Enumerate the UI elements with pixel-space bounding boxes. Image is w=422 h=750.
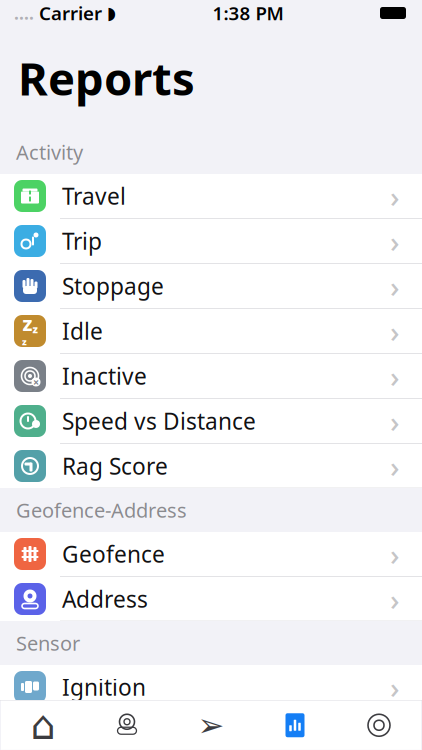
staticText: › <box>390 579 400 618</box>
staticText: 1:38 PM <box>212 1 283 25</box>
staticText: Rag Score <box>62 451 168 481</box>
staticText: Trip <box>62 226 102 256</box>
staticText: Inactive <box>62 361 147 391</box>
button[interactable]: × <box>0 354 422 399</box>
button[interactable]: Reports <box>253 701 337 750</box>
staticText: Travel <box>62 181 126 211</box>
staticText: › <box>390 221 400 260</box>
staticText: › <box>390 446 400 485</box>
staticText: Geofence <box>62 539 165 569</box>
staticText: ⌂ <box>30 703 55 748</box>
staticText: z <box>22 335 27 348</box>
staticText: ◗ <box>107 3 116 23</box>
button[interactable]: Stoppage <box>0 264 422 309</box>
staticText: › <box>390 176 400 215</box>
staticText: › <box>390 667 400 706</box>
staticText: › <box>390 356 400 395</box>
staticText: Carrier <box>39 1 102 25</box>
staticText: › <box>390 401 400 440</box>
staticText: Stoppage <box>62 271 164 301</box>
staticText: Ignition <box>62 672 146 702</box>
button[interactable]: Track <box>169 701 253 750</box>
button[interactable]: Home <box>1 701 85 750</box>
button[interactable]: Speed vs Distance <box>0 399 422 444</box>
staticText: Activity <box>16 139 83 165</box>
staticText: z <box>32 322 37 336</box>
staticText: Sensor <box>16 630 80 656</box>
staticText: Geofence-Address <box>16 497 187 523</box>
button[interactable]: Geofence <box>0 532 422 577</box>
button[interactable]: Rag Score <box>0 444 422 488</box>
button[interactable]: Trip <box>0 219 422 264</box>
button[interactable]: Travel <box>0 174 422 219</box>
staticText: .... <box>14 1 34 24</box>
staticText: Idle <box>62 316 103 346</box>
staticText: › <box>390 311 400 350</box>
staticText: › <box>390 266 400 305</box>
button[interactable]: Ignition <box>0 665 422 710</box>
staticText: Address <box>62 584 148 614</box>
staticText: Speed vs Distance <box>62 406 256 436</box>
staticText: Z <box>22 314 32 335</box>
staticText: × <box>33 375 39 389</box>
staticText: Reports <box>18 48 195 108</box>
staticText: › <box>390 534 400 573</box>
button[interactable]: Address <box>0 577 422 621</box>
button[interactable]: Settings <box>337 701 421 750</box>
button[interactable]: Z <box>0 309 422 354</box>
button[interactable]: Places <box>85 701 169 750</box>
staticText: ➢ <box>197 707 224 743</box>
